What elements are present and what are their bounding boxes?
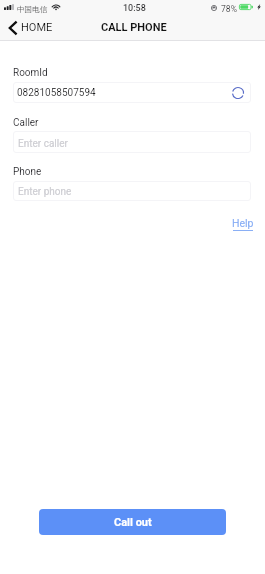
staticText: Call out xyxy=(114,516,152,529)
button[interactable]: Help xyxy=(228,214,256,234)
button[interactable]: Call out xyxy=(39,509,226,535)
staticText: 10:58 xyxy=(123,3,146,14)
button[interactable]: Enter caller xyxy=(13,131,251,153)
staticText: Enter caller xyxy=(18,138,68,150)
staticText: Phone xyxy=(13,166,42,178)
staticText: CALL PHONE xyxy=(101,21,167,34)
button[interactable]: Enter phone xyxy=(13,181,251,201)
button[interactable]: Refresh room id xyxy=(231,86,245,100)
staticText: HOME xyxy=(21,21,53,34)
staticText: 78% xyxy=(221,4,237,14)
staticText: Caller xyxy=(13,117,39,129)
staticText: RoomId xyxy=(13,67,48,79)
staticText: Help xyxy=(232,217,254,229)
staticText: Enter phone xyxy=(18,186,72,198)
button[interactable]: HOME xyxy=(3,18,57,40)
staticText: 08281058507594 xyxy=(17,87,96,99)
staticText: 中国电信 xyxy=(17,5,48,15)
